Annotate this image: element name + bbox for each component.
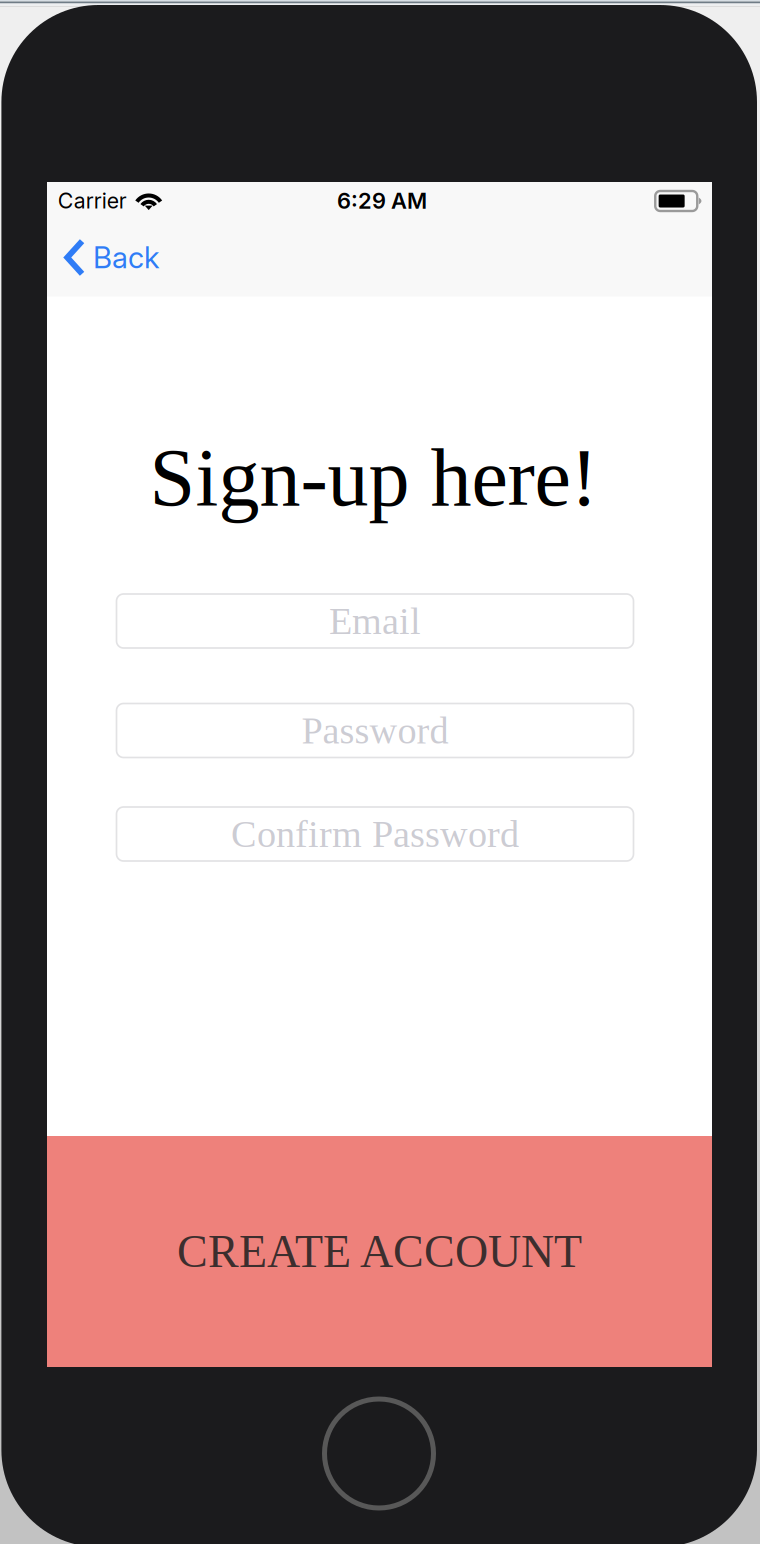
staticText: Confirm Password	[231, 813, 519, 855]
staticText: 6:29 AM	[337, 187, 427, 214]
button[interactable]: CREATE ACCOUNT	[47, 1136, 712, 1367]
staticText: Back	[93, 240, 160, 275]
staticText: Carrier	[58, 188, 127, 214]
staticText: Email	[329, 600, 421, 642]
staticText: Sign-up here!	[149, 432, 597, 523]
button[interactable]: Back	[47, 218, 174, 297]
staticText: CREATE ACCOUNT	[177, 1226, 582, 1277]
staticText: Password	[301, 709, 448, 752]
